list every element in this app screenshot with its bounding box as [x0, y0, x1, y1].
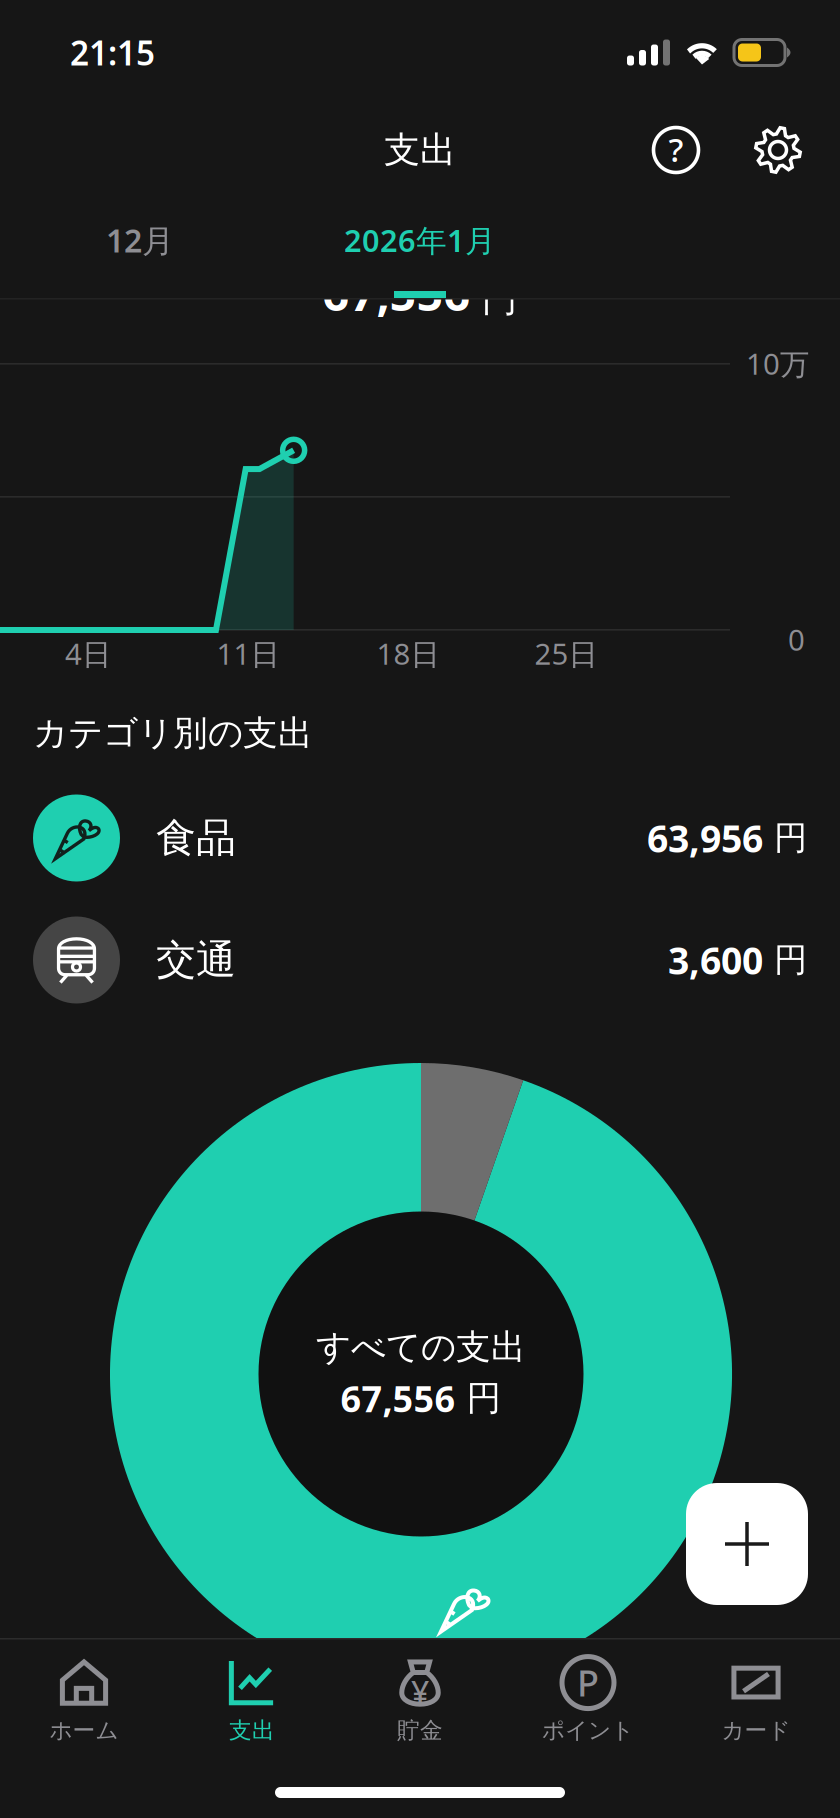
staticText: 18日 — [376, 634, 439, 673]
button[interactable]: ¥ — [336, 1653, 504, 1749]
button[interactable]: 設定 — [742, 114, 814, 186]
staticText: ? — [668, 127, 683, 171]
staticText: 10万 — [746, 344, 809, 383]
staticText: ¥ — [411, 1670, 429, 1713]
staticText: 食品 — [156, 813, 236, 862]
staticText: ポイント — [542, 1717, 634, 1744]
button[interactable]: 追加 — [686, 1483, 808, 1605]
staticText: 交通 — [156, 935, 236, 984]
staticText: 21:15 — [70, 30, 155, 75]
staticText: P — [577, 1659, 599, 1706]
button[interactable]: ホーム — [0, 1653, 168, 1749]
button[interactable]: カード — [672, 1653, 840, 1749]
staticText: ホーム — [49, 1717, 118, 1744]
staticText: 円 — [774, 939, 807, 980]
staticText: 円 — [774, 817, 807, 858]
button[interactable]: 交通 — [0, 899, 840, 1021]
button[interactable]: 12月 — [0, 195, 280, 285]
button[interactable]: ヘルプ — [640, 114, 712, 186]
button[interactable]: 2026年1月 — [280, 195, 560, 285]
staticText: 円 — [481, 277, 517, 321]
staticText: 12月 — [106, 219, 174, 261]
staticText: 63,956 — [647, 813, 763, 863]
staticText: カード — [721, 1717, 790, 1744]
button[interactable]: P — [504, 1653, 672, 1749]
staticText: カテゴリ別の支出 — [33, 712, 313, 755]
staticText: 11日 — [216, 634, 279, 673]
staticText: 支出 — [384, 128, 456, 172]
staticText: 円 — [466, 1377, 501, 1420]
staticText: 貯金 — [397, 1717, 443, 1744]
staticText: 支出 — [229, 1717, 275, 1744]
button[interactable]: 食品 — [0, 777, 840, 899]
staticText: 4日 — [65, 634, 111, 673]
staticText: すべての支出 — [316, 1326, 526, 1368]
button[interactable]: 支出 — [168, 1653, 336, 1749]
staticText: 25日 — [534, 634, 597, 673]
staticText: 67,556 — [322, 262, 470, 324]
staticText: 67,556 — [340, 1374, 455, 1422]
staticText: 3,600 — [668, 935, 763, 985]
staticText: 0 — [788, 620, 805, 659]
staticText: 2026年1月 — [344, 220, 496, 260]
